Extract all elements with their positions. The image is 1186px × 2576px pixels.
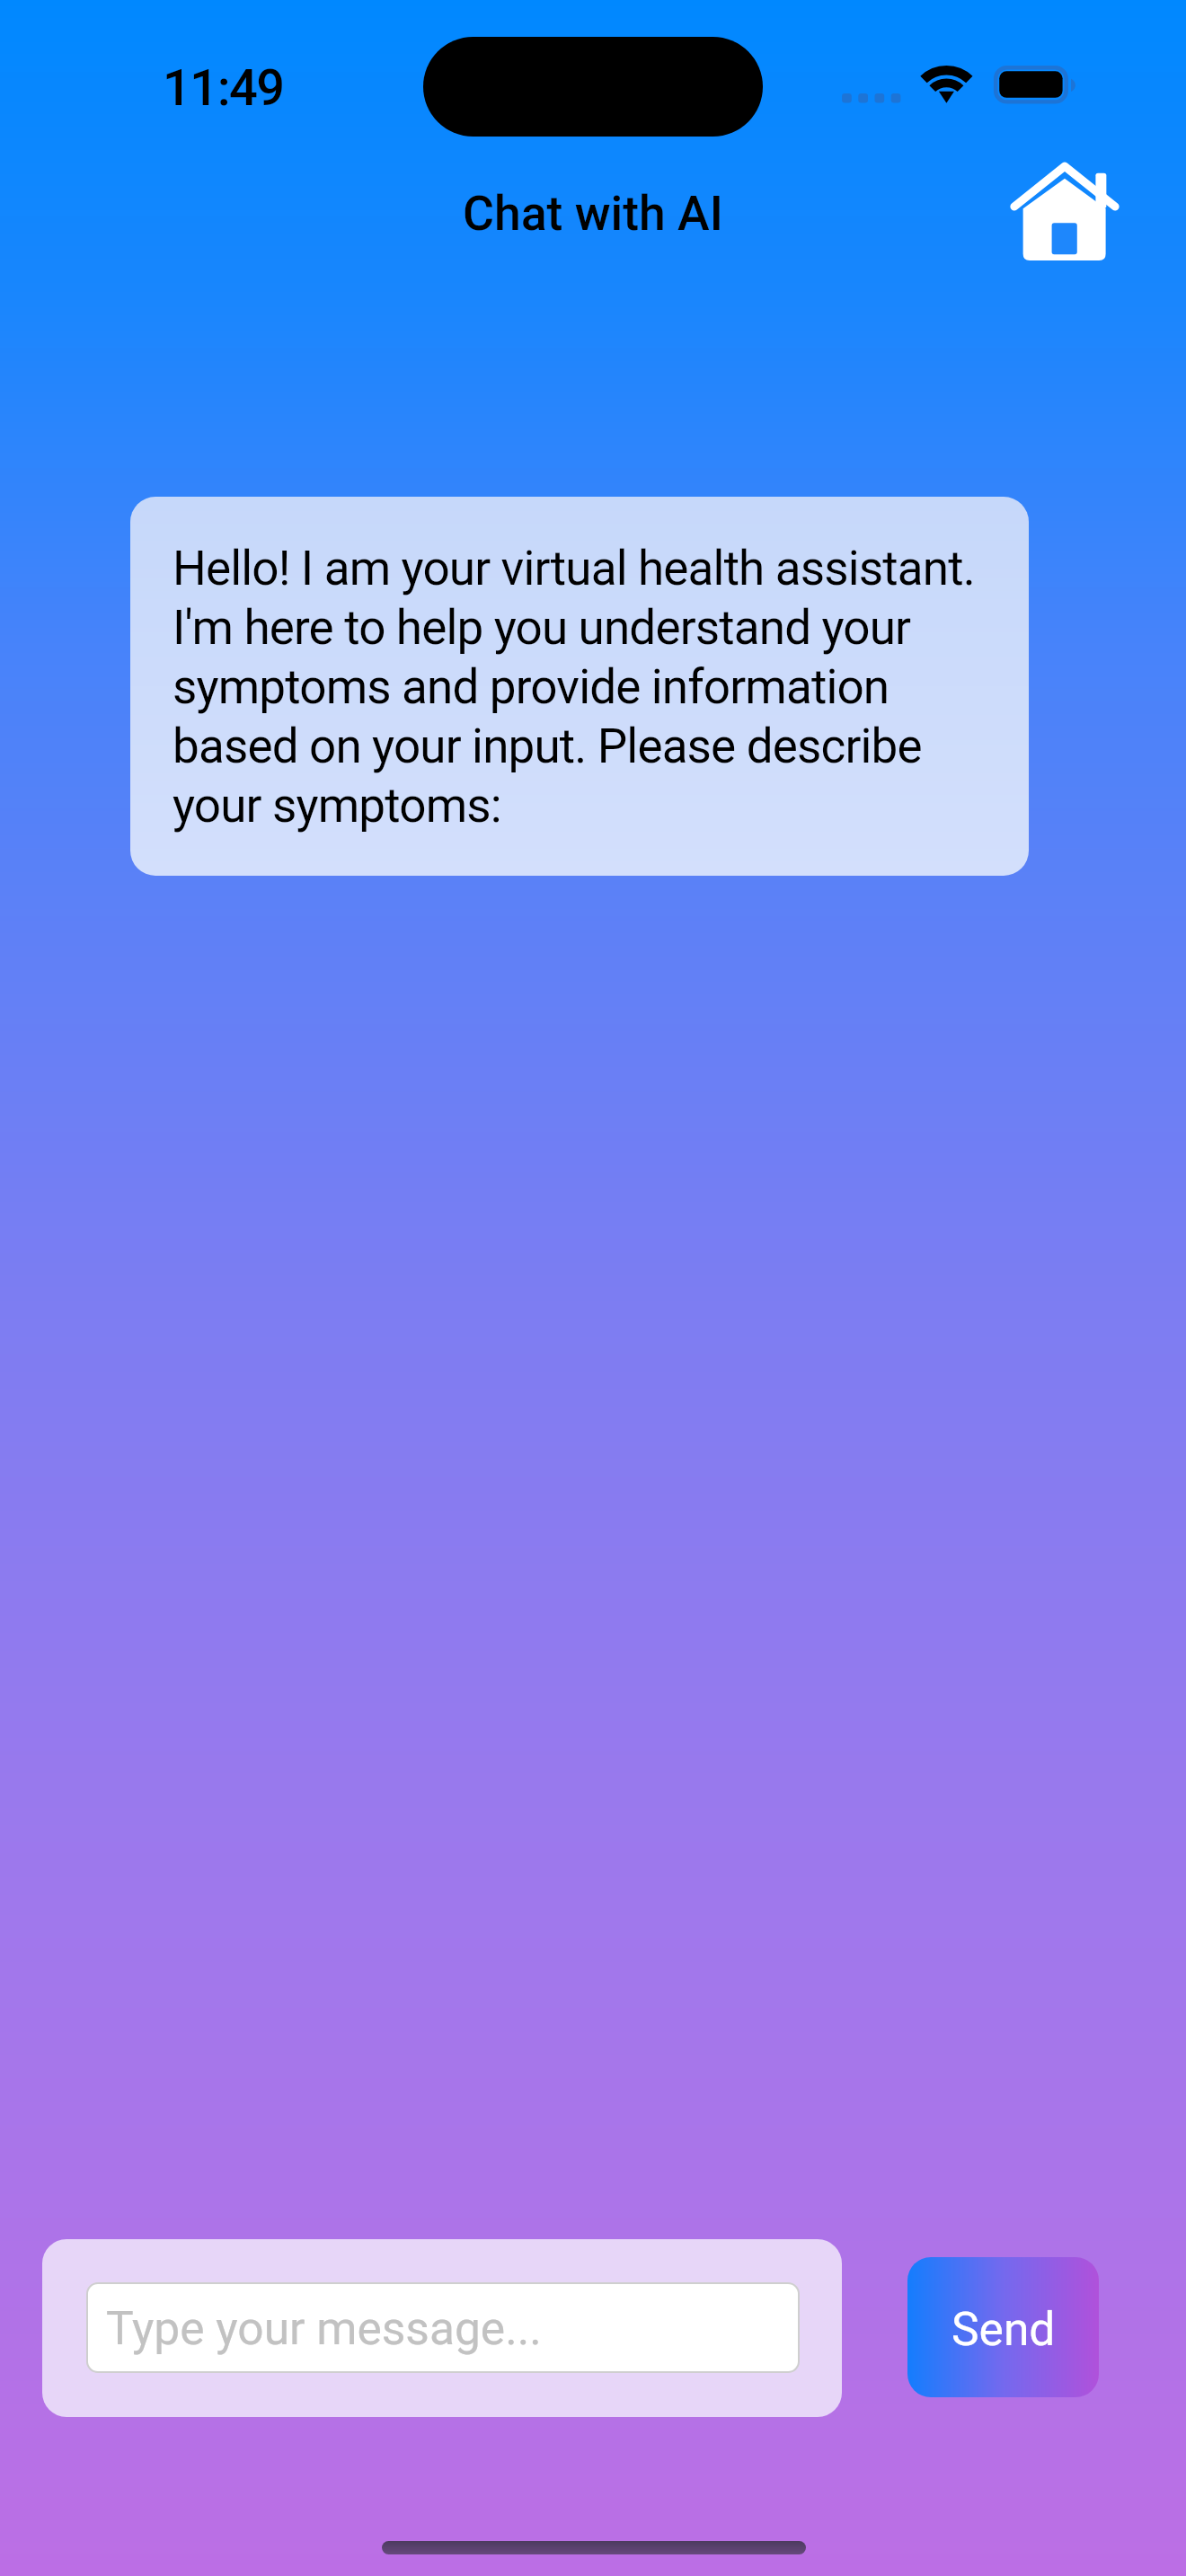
staticText: Type your message... xyxy=(106,2301,542,2355)
staticText: Send xyxy=(951,2302,1056,2356)
button[interactable]: Type your message... xyxy=(88,2284,798,2371)
button[interactable]: Home xyxy=(991,144,1137,279)
staticText: Hello! I am your virtual health assistan… xyxy=(173,541,987,834)
button[interactable]: Send xyxy=(907,2257,1099,2397)
staticText: Chat with AI xyxy=(463,185,723,242)
staticText: 11:49 xyxy=(163,58,284,118)
